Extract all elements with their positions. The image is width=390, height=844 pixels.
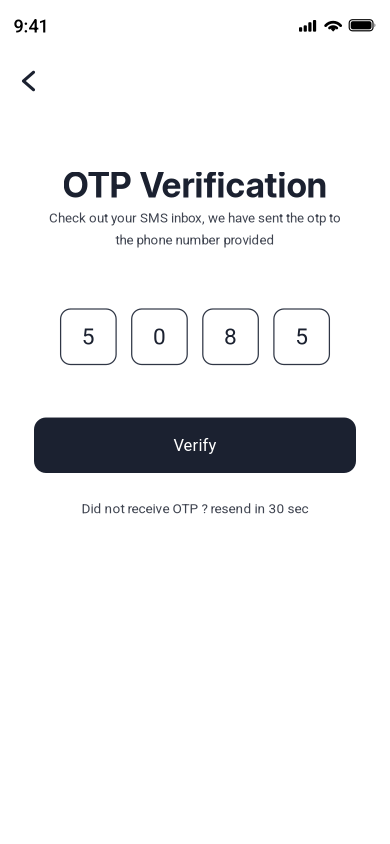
staticText: Check out your SMS inbox, we have sent t… xyxy=(49,210,341,226)
staticText: 0 xyxy=(153,323,166,350)
staticText: 5 xyxy=(82,323,95,350)
button[interactable]: 5 xyxy=(61,309,116,364)
button[interactable]: 8 xyxy=(203,309,258,364)
staticText: 5 xyxy=(295,323,308,350)
staticText: 9:41 xyxy=(13,16,48,37)
button[interactable]: Did not receive OTP ? resend in 30 sec xyxy=(81,500,308,516)
staticText: Did not receive OTP ? resend in 30 sec xyxy=(81,500,308,516)
button[interactable]: Verify xyxy=(34,417,356,473)
button[interactable]: 5 xyxy=(274,309,329,364)
staticText: the phone number provided xyxy=(115,232,274,248)
staticText: Verify xyxy=(173,436,216,455)
staticText: OTP Verification xyxy=(62,164,327,206)
button[interactable]: 0 xyxy=(132,309,187,364)
staticText: 8 xyxy=(224,323,237,350)
button[interactable]: Back xyxy=(6,59,50,103)
